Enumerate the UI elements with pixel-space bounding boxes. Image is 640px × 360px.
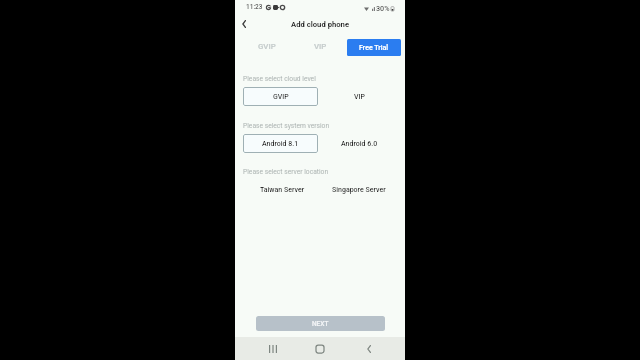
staticText: Free Trial xyxy=(359,44,389,52)
staticText: NEXT xyxy=(312,320,329,328)
staticText: GVIP xyxy=(273,93,289,101)
button[interactable]: Taiwan Server xyxy=(243,180,321,199)
staticText: VIP xyxy=(314,42,327,51)
button[interactable]: Back xyxy=(236,16,252,32)
button[interactable]: VIP xyxy=(293,39,347,56)
staticText: VIP xyxy=(354,93,365,101)
button[interactable]: Back xyxy=(358,340,376,358)
button[interactable]: Free Trial xyxy=(347,39,401,56)
staticText: Android 6.0 xyxy=(341,140,378,148)
button[interactable]: Singapore Server xyxy=(320,180,398,199)
button[interactable]: GVIP xyxy=(243,87,318,106)
staticText: Add cloud phone xyxy=(291,20,350,29)
button[interactable]: Android 8.1 xyxy=(243,134,318,153)
button[interactable]: GVIP xyxy=(240,39,293,56)
staticText: Please select cloud level xyxy=(243,75,316,83)
staticText: Singapore Server xyxy=(332,186,386,194)
staticText: Please select system version xyxy=(243,122,330,130)
button[interactable]: NEXT xyxy=(256,316,385,331)
staticText: GVIP xyxy=(258,42,276,51)
button[interactable]: Recents xyxy=(264,340,282,358)
staticText: 30% xyxy=(376,4,390,12)
button[interactable]: Home xyxy=(311,340,329,358)
button[interactable]: VIP xyxy=(320,87,398,106)
staticText: 11:23 xyxy=(246,3,263,11)
staticText: Taiwan Server xyxy=(260,186,305,194)
staticText: Please select server location xyxy=(243,168,329,176)
staticText: Android 8.1 xyxy=(262,140,299,148)
button[interactable]: Android 6.0 xyxy=(320,134,398,153)
